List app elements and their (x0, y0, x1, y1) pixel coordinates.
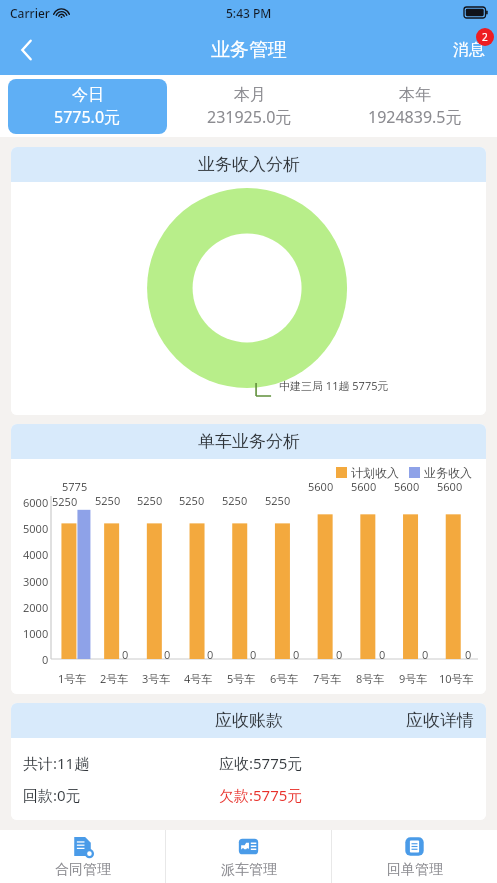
button[interactable]: 本月 (167, 75, 332, 137)
staticText: 0 (293, 647, 300, 662)
staticText: 6000 (23, 495, 49, 510)
staticText: 5600 (308, 479, 334, 494)
staticText: 5250 (52, 494, 78, 509)
button[interactable]: 合同管理 (0, 830, 165, 883)
staticText: 5600 (394, 479, 420, 494)
staticText: 共计:11趟 (23, 753, 219, 773)
button[interactable]: Back (0, 25, 52, 75)
staticText: 回单管理 (387, 861, 443, 879)
staticText: 1号车 (58, 671, 87, 686)
staticText: 业务管理 (211, 38, 287, 62)
staticText: 4000 (23, 547, 49, 562)
staticText: 5250 (222, 493, 248, 508)
staticText: 7号车 (313, 671, 342, 686)
staticText: 回款:0元 (23, 785, 219, 805)
staticText: 派车管理 (221, 861, 277, 879)
staticText: 5250 (265, 493, 291, 508)
staticText: 0 (122, 647, 129, 662)
staticText: 5:43 PM (226, 5, 272, 21)
staticText: 计划收入 (351, 465, 399, 480)
staticText: 10号车 (439, 671, 474, 686)
staticText: 3000 (23, 574, 49, 589)
staticText: 0 (379, 647, 386, 662)
staticText: 5250 (179, 493, 205, 508)
staticText: 0 (164, 647, 171, 662)
staticText: 5250 (95, 493, 121, 508)
staticText: 应收账款 (215, 710, 283, 731)
staticText: 消息 (453, 40, 485, 60)
staticText: 0 (336, 647, 343, 662)
staticText: 单车业务分析 (198, 431, 300, 452)
staticText: 5775 (62, 479, 88, 494)
button[interactable]: 回单管理 (332, 830, 497, 883)
staticText: 2000 (23, 600, 49, 615)
staticText: 合同管理 (55, 861, 111, 879)
staticText: 今日 (72, 85, 104, 105)
staticText: 中建三局 11趟 5775元 (279, 378, 389, 393)
staticText: 业务收入分析 (198, 154, 300, 175)
staticText: 欠款:5775元 (219, 785, 303, 805)
staticText: 0 (207, 647, 214, 662)
staticText: 0 (42, 652, 49, 667)
staticText: 2号车 (100, 671, 129, 686)
staticText: 5600 (351, 479, 377, 494)
staticText: 应收:5775元 (219, 753, 303, 773)
staticText: 3号车 (142, 671, 171, 686)
staticText: 6号车 (270, 671, 299, 686)
staticText: Carrier (10, 5, 50, 21)
staticText: 5775.0元 (54, 106, 121, 128)
button[interactable]: 派车管理 (166, 830, 331, 883)
staticText: 业务收入 (424, 465, 472, 480)
button[interactable]: 应收详情 (406, 703, 474, 738)
staticText: 5250 (137, 493, 163, 508)
staticText: 应收详情 (406, 710, 474, 731)
staticText: 1000 (23, 626, 49, 641)
staticText: 4号车 (184, 671, 213, 686)
button[interactable]: 今日 (8, 79, 167, 134)
staticText: 本年 (399, 85, 431, 105)
staticText: 5000 (23, 521, 49, 536)
staticText: 5600 (437, 479, 463, 494)
staticText: 8号车 (356, 671, 385, 686)
staticText: 9号车 (399, 671, 428, 686)
staticText: 本月 (234, 85, 266, 105)
staticText: 0 (250, 647, 257, 662)
button[interactable]: 消息 (453, 25, 497, 75)
staticText: 0 (465, 647, 472, 662)
staticText: 0 (422, 647, 429, 662)
staticText: 5号车 (227, 671, 256, 686)
staticText: 2 (482, 30, 488, 44)
staticText: 231925.0元 (207, 106, 292, 128)
staticText: 1924839.5元 (368, 106, 462, 128)
button[interactable]: 本年 (332, 75, 497, 137)
